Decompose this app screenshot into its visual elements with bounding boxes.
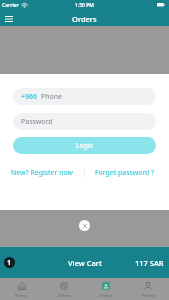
staticText: Orders (99, 293, 113, 299)
staticText: Offers (58, 293, 71, 299)
staticText: Home (15, 293, 28, 299)
button[interactable]: Home (0, 278, 43, 300)
button[interactable]: Forget password ? (83, 166, 167, 178)
button[interactable]: +966 (13, 88, 156, 105)
staticText: View Cart (68, 258, 102, 268)
staticText: Login (76, 141, 94, 150)
button[interactable]: New? Register now (0, 166, 84, 178)
staticText: Orders (72, 14, 97, 24)
staticText: New? Register now (11, 168, 73, 177)
staticText: Profile (142, 293, 155, 299)
staticText: Carrier (2, 2, 19, 9)
staticText: Forget password ? (95, 168, 155, 177)
button[interactable]: Profile (127, 278, 169, 300)
button[interactable]: Orders (85, 278, 127, 300)
button[interactable]: Menu (2, 12, 16, 26)
button[interactable]: Login (13, 137, 156, 154)
staticText: Phone (41, 92, 63, 102)
staticText: Password (21, 117, 53, 127)
button[interactable]: Offers (43, 278, 85, 300)
button[interactable]: Password (13, 113, 156, 130)
staticText: +966 (21, 92, 38, 102)
button[interactable]: Close (79, 220, 90, 231)
staticText: 1 (7, 258, 12, 268)
staticText: 1:50 PM (75, 2, 94, 9)
staticText: 117 SAR (135, 258, 164, 268)
button[interactable]: 1 (0, 247, 169, 278)
